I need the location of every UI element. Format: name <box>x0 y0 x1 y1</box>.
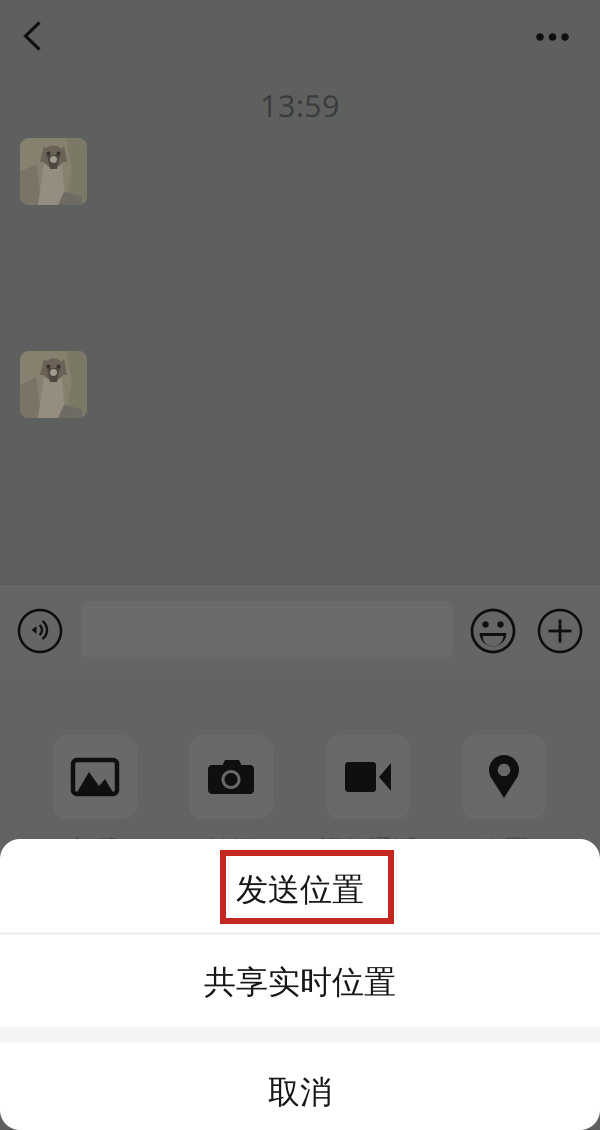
staticText: 拍摄 <box>206 834 256 865</box>
button[interactable]: Back <box>24 21 41 51</box>
button[interactable]: 位置 <box>436 735 572 865</box>
button[interactable]: 共享实时位置 <box>0 934 600 1026</box>
button[interactable]: More <box>536 33 569 41</box>
button[interactable]: 视频通话 <box>300 735 436 865</box>
button[interactable]: 取消 <box>0 1042 600 1130</box>
button[interactable]: 相册 <box>27 735 163 865</box>
staticText: 13:59 <box>260 85 340 126</box>
button[interactable]: 发送位置 <box>0 839 600 933</box>
staticText: 共享实时位置 <box>204 963 396 1002</box>
staticText: 位置 <box>479 834 529 865</box>
staticText: 相册 <box>70 834 120 865</box>
button[interactable]: Emoji <box>471 609 515 653</box>
staticText: 视频通话 <box>318 834 418 865</box>
staticText: 取消 <box>268 1073 332 1112</box>
button[interactable]: Hold to talk <box>18 609 62 653</box>
button[interactable]: More <box>538 609 582 653</box>
button[interactable]: 拍摄 <box>163 735 299 865</box>
staticText: 发送位置 <box>236 870 364 909</box>
